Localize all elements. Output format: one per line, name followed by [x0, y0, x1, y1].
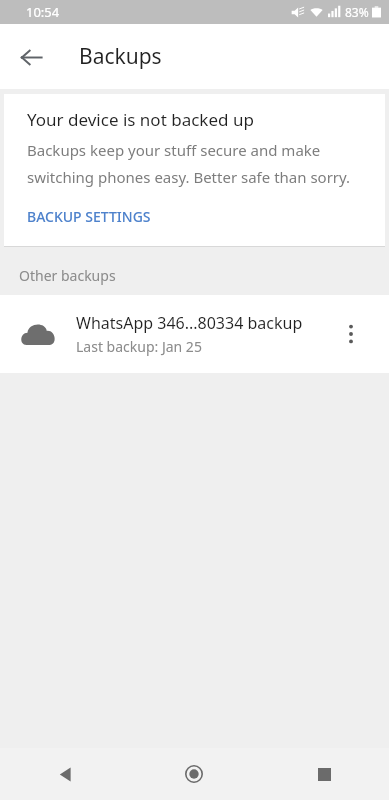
button[interactable]: WhatsApp 346...80334 backup [0, 295, 389, 373]
button[interactable]: Back [38, 748, 92, 800]
staticText: switching phones easy. Better safe than … [27, 167, 351, 187]
button[interactable]: More options [327, 310, 375, 358]
staticText: Last backup: Jan 25 [76, 337, 202, 356]
staticText: WhatsApp 346...80334 backup [76, 312, 303, 334]
button[interactable]: Recent apps [297, 748, 351, 800]
staticText: 83% [345, 4, 369, 20]
staticText: BACKUP SETTINGS [27, 207, 151, 226]
button[interactable]: Back [10, 36, 52, 78]
staticText: Backups keep your stuff secure and make [27, 140, 321, 160]
staticText: Other backups [19, 266, 116, 285]
staticText: Your device is not backed up [27, 108, 254, 131]
staticText: 10:54 [26, 3, 60, 21]
staticText: Backups [79, 42, 162, 71]
button[interactable]: Home [167, 748, 221, 800]
button[interactable]: BACKUP SETTINGS [19, 203, 159, 230]
